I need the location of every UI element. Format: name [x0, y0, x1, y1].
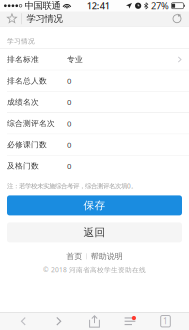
button[interactable]: Tabs [153, 313, 177, 330]
button[interactable]: 学习情况 [27, 13, 63, 24]
staticText: 中国联通 [24, 0, 60, 11]
staticText: 学习情况 [7, 37, 35, 45]
staticText: 必修课门数 [7, 140, 47, 149]
button[interactable]: Bookmarks [3, 11, 21, 26]
staticText: 0 [67, 139, 71, 150]
staticText: 及格门数 [7, 161, 39, 171]
staticText: 学习情况 [27, 13, 63, 24]
staticText: 注：若学校未实施综合考评，综合测评名次填0。 [7, 181, 137, 190]
staticText: 帮助说明 [91, 251, 123, 261]
staticText: 排名标准 [7, 55, 39, 64]
staticText: 0 [67, 97, 71, 107]
button[interactable]: 成绩名次 [0, 92, 189, 112]
button[interactable]: Share [82, 313, 106, 330]
button[interactable]: 综合测评名次 [0, 113, 189, 134]
staticText: 0 [67, 75, 71, 86]
staticText: 0 [67, 118, 71, 129]
staticText: 12:41 [87, 0, 110, 12]
staticText: 综合测评名次 [7, 118, 55, 128]
button[interactable]: Back [11, 313, 35, 330]
staticText: 0 [67, 161, 71, 171]
button[interactable]: 返回 [7, 222, 182, 242]
button[interactable]: 保存 [7, 195, 182, 215]
staticText: © 2018 河南省高校学生资助在线 [43, 265, 146, 274]
staticText: 首页 [66, 251, 82, 261]
staticText: 1 [163, 316, 168, 326]
button[interactable]: 排名标准 [0, 49, 189, 70]
staticText: 返回 [83, 226, 105, 239]
button[interactable]: Reload [168, 11, 186, 26]
button[interactable]: 必修课门数 [0, 134, 189, 155]
staticText: 排名总人数 [7, 76, 47, 86]
button[interactable]: 及格门数 [0, 156, 189, 176]
staticText: 保存 [83, 199, 105, 212]
staticText: 27% [151, 0, 169, 12]
button[interactable]: 帮助说明 [91, 251, 123, 261]
button[interactable]: 首页 [66, 251, 82, 261]
staticText: 专业 [67, 55, 83, 64]
button[interactable]: 排名总人数 [0, 70, 189, 91]
button[interactable]: Bookmarks [118, 313, 142, 330]
staticText: 成绩名次 [7, 97, 39, 107]
button[interactable]: Forward [47, 313, 71, 330]
